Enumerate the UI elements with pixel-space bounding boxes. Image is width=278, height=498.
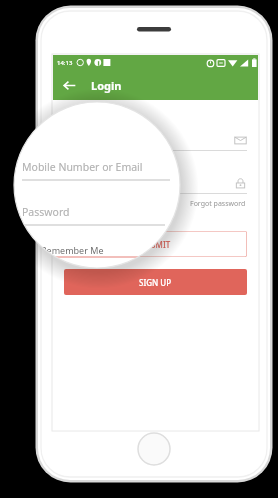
button[interactable]: SUBMIT	[64, 231, 247, 257]
button[interactable]: Forgot password	[189, 198, 247, 210]
staticText: SUBMIT	[140, 239, 171, 250]
staticText: Mobile Number or Email	[22, 160, 143, 174]
button[interactable]: SIGN UP	[64, 269, 247, 295]
staticText: Remember Me	[78, 218, 131, 228]
button[interactable]: Remember Me	[64, 218, 131, 228]
button[interactable]: Password	[64, 171, 247, 194]
button[interactable]: Back	[57, 73, 81, 97]
staticText: Forgot password	[190, 199, 246, 209]
button[interactable]: Mobile Number or Email	[64, 128, 247, 151]
staticText: Remember Me	[41, 244, 104, 256]
staticText: SIGN UP	[139, 277, 172, 288]
staticText: Login	[91, 78, 122, 93]
staticText: Password	[64, 179, 101, 190]
staticText: Password	[22, 205, 70, 219]
staticText: 14:13	[57, 59, 73, 67]
